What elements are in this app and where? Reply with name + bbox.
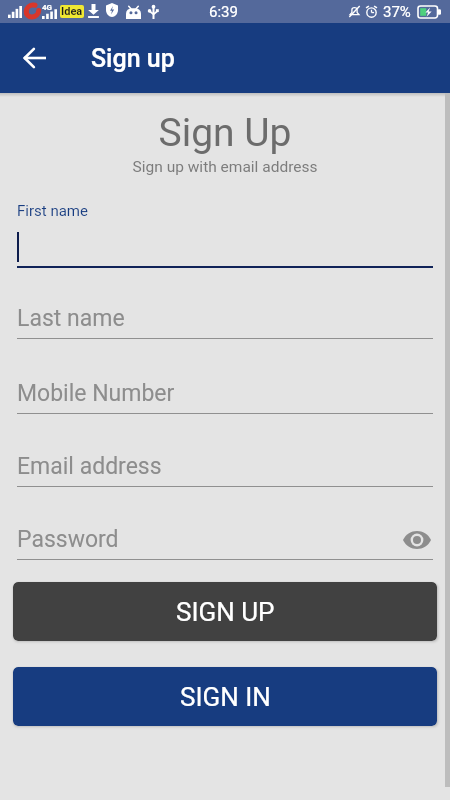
button[interactable]: Last name xyxy=(17,305,433,339)
button[interactable]: Show password xyxy=(401,527,433,553)
staticText: Sign Up xyxy=(0,110,450,156)
button[interactable]: Back xyxy=(0,23,70,93)
staticText: Last name xyxy=(17,305,433,332)
staticText: Email address xyxy=(17,453,433,480)
staticText: SIGN IN xyxy=(180,682,271,712)
staticText: Sign up with email address xyxy=(0,158,450,176)
button[interactable]: Mobile Number xyxy=(17,380,433,414)
staticText: Sign up xyxy=(91,44,175,73)
staticText: First name xyxy=(17,202,88,220)
staticText: 37% xyxy=(383,3,411,21)
button[interactable]: Password xyxy=(17,526,433,560)
staticText: Idea xyxy=(61,5,83,18)
button[interactable]: SIGN UP xyxy=(13,582,437,641)
staticText: Password xyxy=(17,526,401,553)
staticText: SIGN UP xyxy=(176,597,275,627)
button[interactable]: Email address xyxy=(17,453,433,487)
button[interactable]: SIGN IN xyxy=(13,667,437,726)
staticText: 4G xyxy=(42,3,53,12)
staticText: 6:39 xyxy=(209,3,238,21)
staticText: Mobile Number xyxy=(17,380,433,407)
